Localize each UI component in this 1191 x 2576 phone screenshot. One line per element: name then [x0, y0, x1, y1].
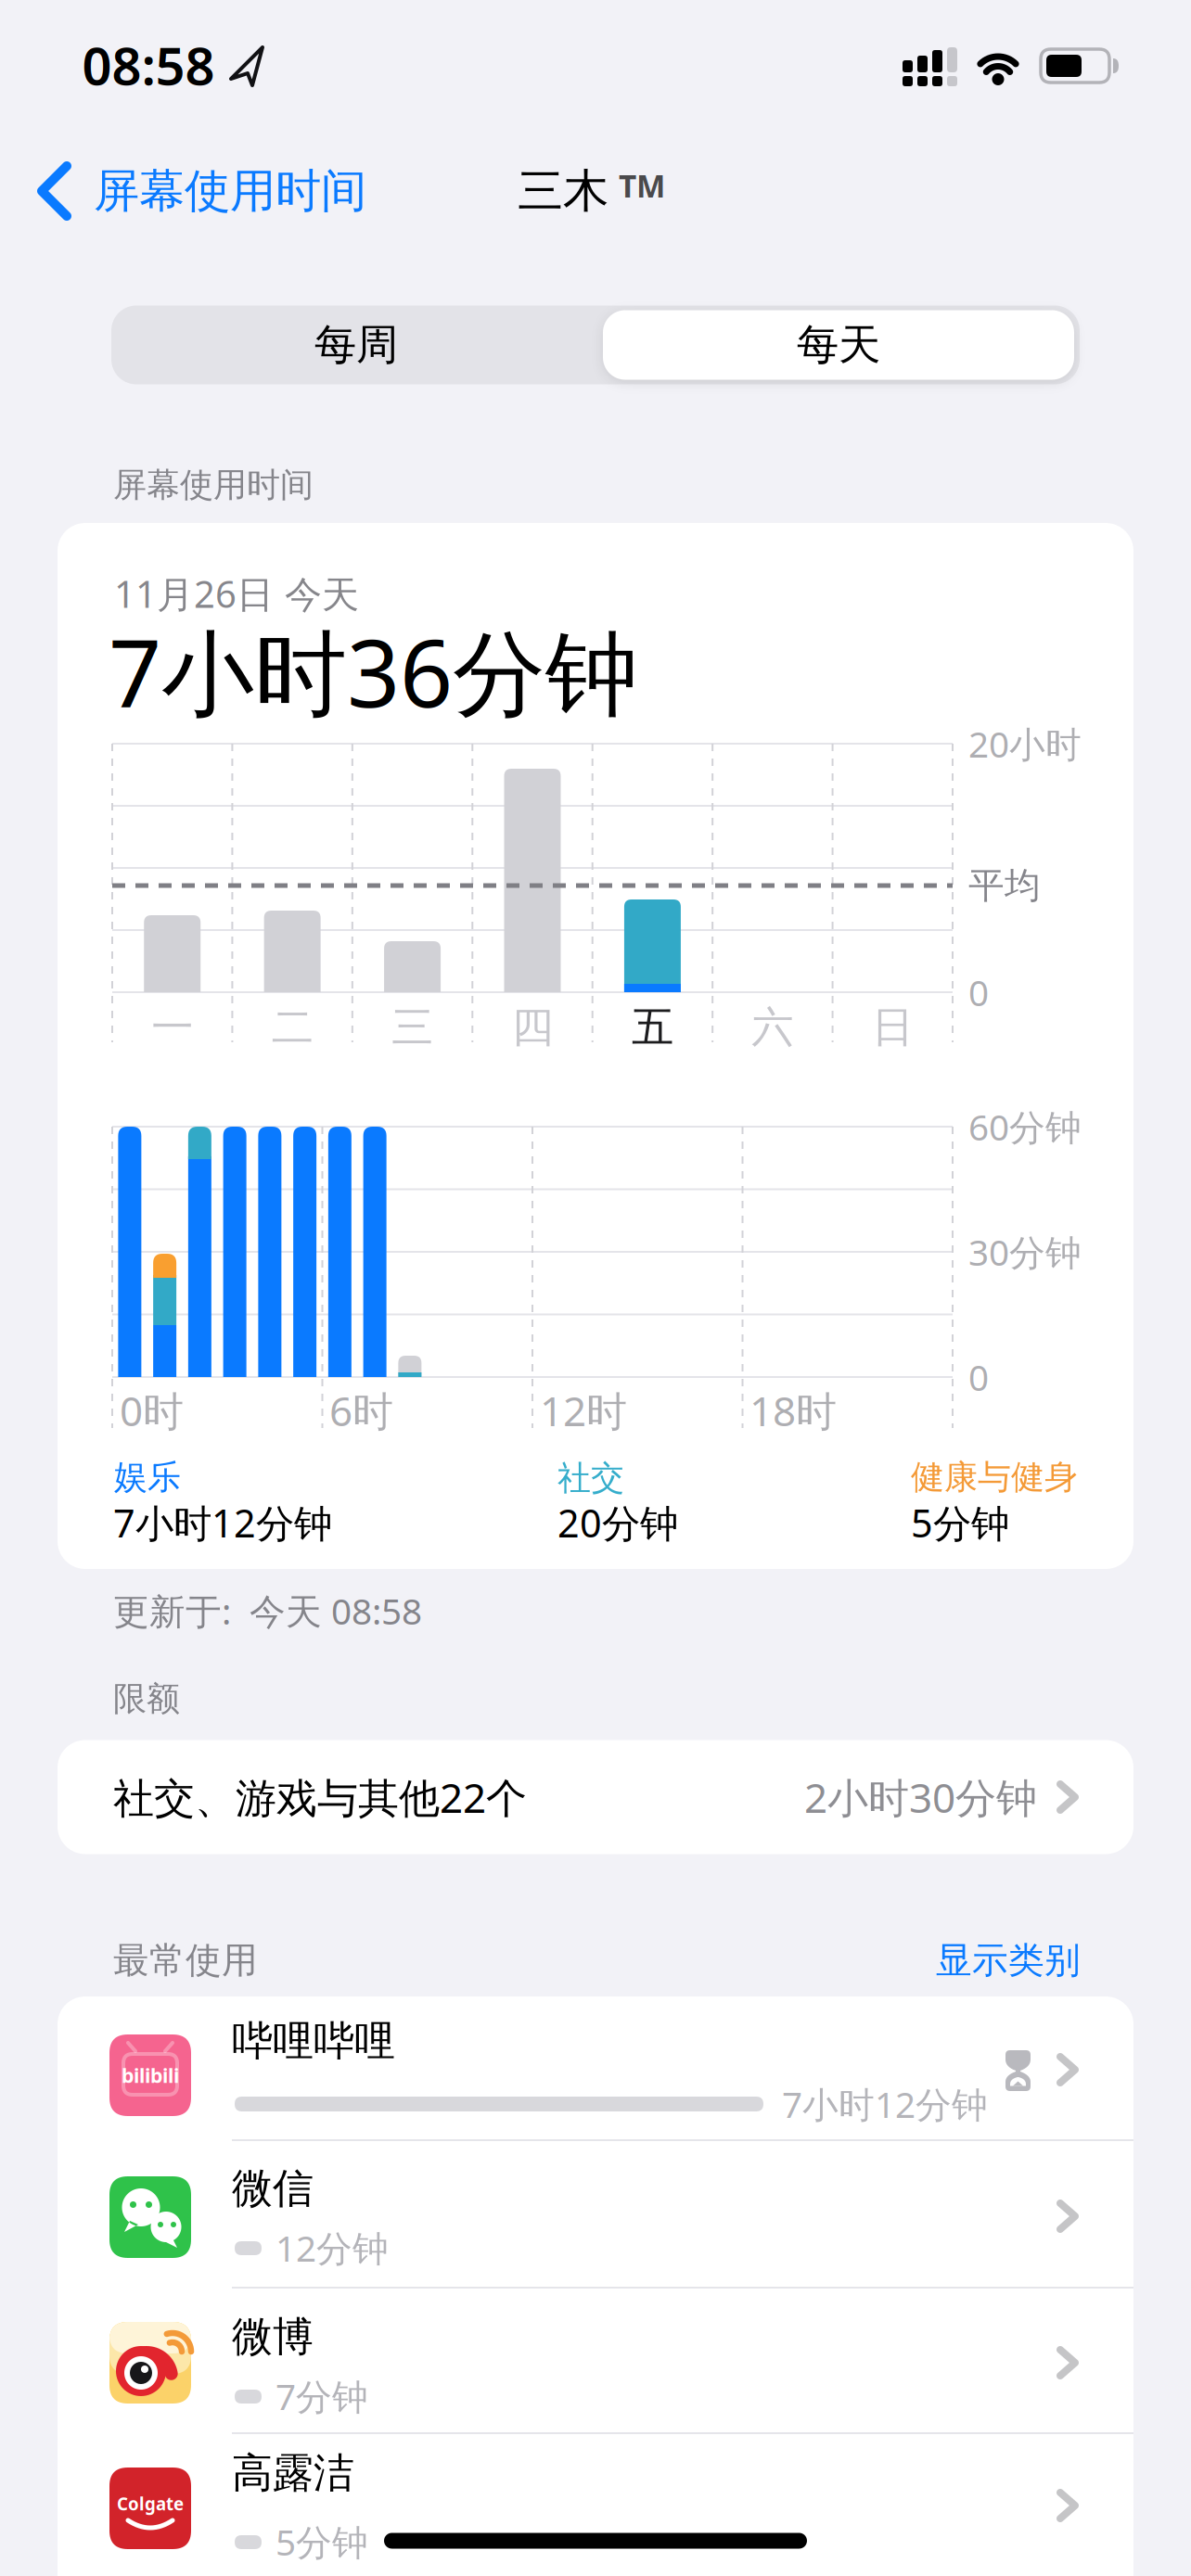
staticText: 六 [752, 1002, 793, 1053]
staticText: 12时 [540, 1383, 627, 1437]
staticText: 微博 [232, 2312, 314, 2362]
staticText: Colgate [117, 2492, 184, 2515]
staticText: 娱乐 [114, 1457, 181, 1498]
staticText: 18时 [749, 1383, 837, 1437]
staticText: 6时 [329, 1383, 393, 1437]
staticText: 四 [512, 1002, 553, 1053]
staticText: 2小时30分钟 [804, 1770, 1037, 1824]
staticText: 20分钟 [557, 1497, 678, 1548]
staticText: 健康与健身 [911, 1457, 1078, 1498]
staticText: 7分钟 [275, 2372, 368, 2420]
button[interactable]: 每天 [0, 0, 1191, 2576]
staticText: 0 [968, 1353, 989, 1401]
staticText: 7小时36分钟 [109, 610, 638, 733]
staticText: 二 [271, 1002, 313, 1053]
staticText: 更新于: 今天 08:58 [113, 1587, 422, 1634]
button[interactable]: 显示类别 [0, 0, 1191, 2576]
staticText: 微信 [232, 2163, 314, 2213]
staticText: 每周 [314, 319, 398, 371]
staticText: 日 [872, 1002, 913, 1053]
staticText: 平均 [968, 864, 1041, 908]
staticText: 7小时12分钟 [113, 1497, 332, 1548]
staticText: 7小时12分钟 [782, 2080, 988, 2128]
staticText: 5分钟 [911, 1497, 1009, 1548]
staticText: 一 [151, 1002, 193, 1053]
staticText: 5分钟 [275, 2518, 368, 2565]
button[interactable]: 每周 [0, 0, 1191, 2576]
staticText: 12分钟 [275, 2224, 389, 2271]
button[interactable]: 微信 [0, 0, 1191, 2576]
staticText: 哔哩哔哩 [232, 2016, 395, 2066]
staticText: 屏幕使用时间 [113, 464, 314, 505]
staticText: 最常使用 [113, 1938, 258, 1982]
button[interactable]: bilibili [0, 0, 1191, 2576]
staticText: 社交、游戏与其他22个 [113, 1770, 527, 1824]
staticText: 社交 [557, 1458, 624, 1499]
button[interactable]: Colgate [0, 0, 1191, 2576]
staticText: 11月26日 今天 [114, 569, 359, 618]
staticText: bilibili [122, 2062, 179, 2088]
staticText: 三 [392, 1002, 433, 1053]
staticText: 0时 [120, 1383, 184, 1437]
staticText: 60分钟 [968, 1103, 1082, 1150]
staticText: 30分钟 [968, 1228, 1082, 1276]
staticText: 08:58 [82, 30, 215, 99]
staticText: TM [619, 165, 665, 206]
staticText: 屏幕使用时间 [94, 163, 366, 219]
button[interactable]: 微博 [0, 0, 1191, 2576]
staticText: 20小时 [968, 720, 1082, 767]
staticText: 限额 [113, 1678, 180, 1719]
staticText: 每天 [797, 319, 880, 371]
staticText: 0 [968, 968, 989, 1016]
staticText: 五 [632, 1002, 673, 1053]
button[interactable]: 社交、游戏与其他22个 [0, 0, 1191, 2576]
button[interactable]: 屏幕使用时间 [0, 0, 1191, 2576]
staticText: 显示类别 [936, 1938, 1081, 1982]
staticText: 三木 [518, 163, 608, 219]
staticText: 高露洁 [232, 2448, 354, 2498]
